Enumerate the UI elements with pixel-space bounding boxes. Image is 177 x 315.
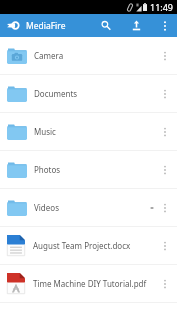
- button[interactable]: More options: [156, 265, 174, 302]
- staticText: Camera: [34, 50, 64, 61]
- button[interactable]: More options: [156, 113, 174, 150]
- button[interactable]: More options: [156, 189, 174, 226]
- button[interactable]: More options: [156, 37, 174, 74]
- button[interactable]: More options: [156, 151, 174, 188]
- button[interactable]: More options: [156, 17, 174, 35]
- staticText: August Team Project.docx: [33, 240, 131, 251]
- staticText: Music: [34, 126, 56, 137]
- button[interactable]: Music: [0, 113, 177, 150]
- staticText: MediaFire: [26, 20, 66, 32]
- staticText: Documents: [34, 88, 78, 99]
- button[interactable]: Documents: [0, 75, 177, 112]
- button[interactable]: Camera: [0, 37, 177, 74]
- button[interactable]: More options: [156, 227, 174, 264]
- button[interactable]: Videos: [0, 189, 177, 226]
- button[interactable]: Search: [94, 14, 117, 37]
- button[interactable]: Upload: [125, 14, 148, 37]
- staticText: Time Machine DIY Tutorial.pdf: [33, 278, 147, 289]
- button[interactable]: Time Machine DIY Tutorial.pdf: [0, 265, 177, 302]
- button[interactable]: Photos: [0, 151, 177, 188]
- staticText: 11:49: [150, 1, 174, 13]
- staticText: Videos: [34, 202, 59, 213]
- button[interactable]: August Team Project.docx: [0, 227, 177, 264]
- button[interactable]: More options: [156, 75, 174, 112]
- staticText: Photos: [34, 164, 61, 175]
